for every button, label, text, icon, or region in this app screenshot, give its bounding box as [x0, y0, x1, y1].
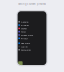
staticText: Settings screen preview: [18, 2, 46, 6]
staticText: Display: [21, 24, 29, 27]
button[interactable]: Display: [17, 23, 47, 27]
staticText: App Store: [21, 42, 30, 45]
staticText: Privacy: [21, 37, 28, 40]
button[interactable]: Screen Time: [17, 33, 47, 37]
staticText: Screen Time: [21, 33, 33, 37]
button[interactable]: Passwords: [17, 48, 47, 51]
button[interactable]: App Store: [17, 42, 47, 45]
staticText: General: [21, 20, 29, 23]
button[interactable]: General: [17, 20, 47, 23]
button[interactable]: Privacy: [17, 37, 47, 40]
staticText: Passwords: [21, 48, 31, 51]
staticText: Focus: [21, 30, 26, 33]
staticText: Sounds: [21, 27, 27, 30]
button[interactable]: Sounds: [17, 27, 47, 30]
staticText: Wallet: [21, 45, 28, 48]
button[interactable]: Focus: [17, 30, 47, 33]
button[interactable]: Wallet: [17, 45, 47, 48]
